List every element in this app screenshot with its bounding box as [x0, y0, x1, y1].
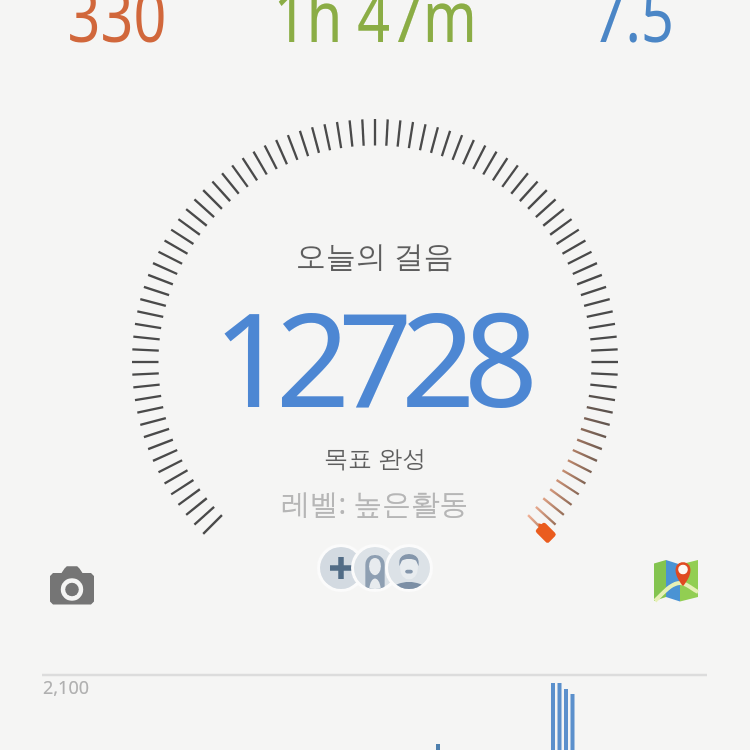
staticText: 12728 [213, 268, 527, 445]
button[interactable]: 1h 47m [215, 0, 535, 63]
button[interactable]: Add friend [317, 544, 365, 592]
staticText: 목표 완성 [324, 441, 427, 474]
button[interactable]: Friend [351, 544, 399, 592]
staticText: 레벨: 높은활동 [281, 483, 469, 522]
button[interactable]: 330 [0, 0, 277, 63]
button[interactable]: Friend [385, 544, 433, 592]
button[interactable]: Camera [46, 558, 98, 610]
staticText: 7.5 [593, 0, 674, 63]
staticText: 오늘의 걸음 [296, 235, 454, 276]
staticText: 2,100 [43, 675, 90, 700]
button[interactable]: 7.5 [473, 0, 750, 63]
staticText: 1h 47m [274, 0, 477, 63]
staticText: 330 [68, 0, 166, 63]
button[interactable]: Map [650, 553, 702, 605]
